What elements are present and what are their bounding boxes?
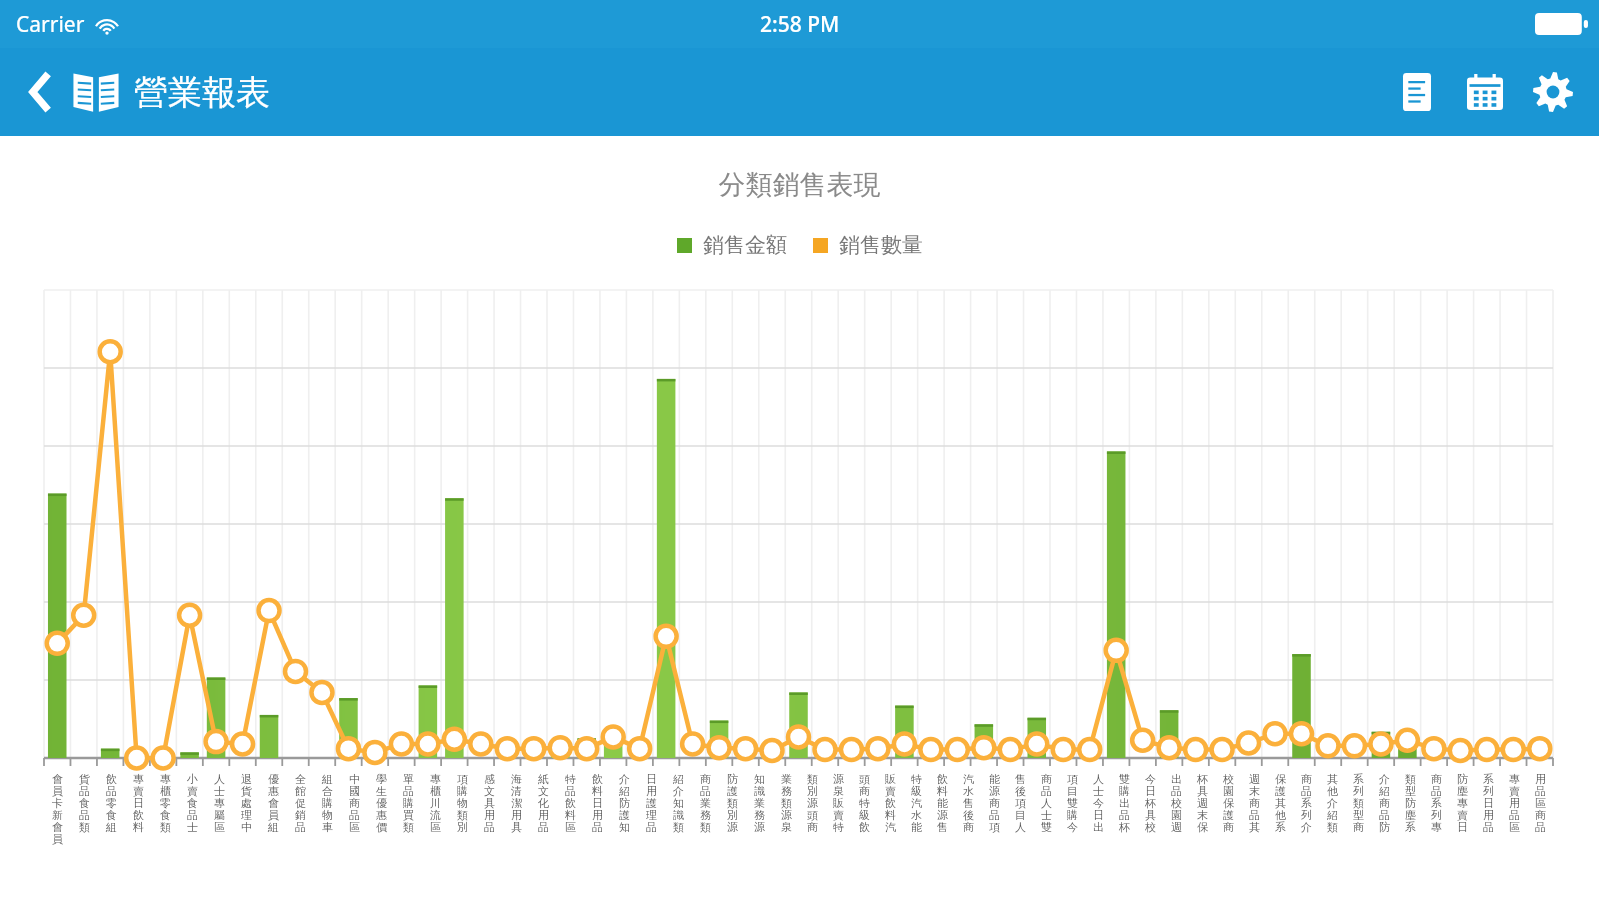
staticText: 保護其他系	[1274, 772, 1287, 834]
staticText: 全館促銷品	[294, 772, 307, 834]
staticText: 出品校園週	[1170, 772, 1183, 834]
staticText: 日用護理品	[645, 772, 658, 834]
staticText: 退貨處理中	[240, 772, 253, 834]
staticText: 項購物類別	[456, 772, 469, 834]
staticText: 介紹防護知	[618, 772, 631, 834]
staticText: 類型防塵系	[1404, 772, 1417, 834]
staticText: 販賣飲料汽	[884, 772, 897, 834]
staticText: 專櫃零食類	[159, 772, 172, 834]
staticText: 汽水售後商	[962, 772, 975, 834]
staticText: 飲料能源售	[936, 772, 949, 834]
staticText: 優惠會員組	[267, 772, 280, 834]
staticText: 人士今日出	[1092, 772, 1105, 834]
staticText: 貨品食品類	[78, 772, 91, 834]
staticText: 營業報表	[134, 71, 270, 114]
staticText: 校園保護商	[1222, 772, 1235, 834]
staticText: 專賣用品區	[1508, 772, 1521, 834]
staticText: 今日杯具校	[1144, 772, 1157, 834]
staticText: 感文具用品	[483, 772, 496, 834]
button[interactable]: 銷售金額	[677, 232, 787, 258]
staticText: 飲品零食組	[105, 772, 118, 834]
staticText: 單品購買類	[402, 772, 415, 834]
button[interactable]: Calendar	[1457, 64, 1513, 120]
staticText: 頭商特級飲	[858, 772, 871, 834]
staticText: 知識業務源	[753, 772, 766, 834]
staticText: 專櫃川流區	[429, 772, 442, 834]
staticText: 專賣日飲料	[132, 772, 145, 834]
staticText: 商品系列專	[1430, 772, 1443, 834]
staticText: 飲料日用品	[591, 772, 604, 834]
staticText: 系列日用品	[1482, 772, 1495, 834]
staticText: 系列類型商	[1352, 772, 1365, 834]
staticText: 紹介知識類	[672, 772, 685, 834]
staticText: 特品飲料區	[564, 772, 577, 834]
staticText: 紙文化用品	[537, 772, 550, 834]
staticText: 特級汽水能	[910, 772, 923, 834]
staticText: 海清潔用具	[510, 772, 523, 834]
staticText: 2:58 PM	[760, 10, 840, 39]
button[interactable]: Settings	[1525, 64, 1581, 120]
staticText: 週末商品其	[1248, 772, 1261, 834]
staticText: 杯具週末保	[1196, 772, 1209, 834]
staticText: 用品區商品	[1534, 772, 1547, 834]
button[interactable]: 銷售數量	[813, 232, 923, 258]
staticText: 銷售數量	[839, 232, 923, 258]
staticText: 人士專屬區	[213, 772, 226, 834]
staticText: 類別源頭商	[806, 772, 819, 834]
staticText: 項目雙購今	[1066, 772, 1079, 834]
button[interactable]: Back	[16, 63, 64, 121]
staticText: Carrier	[16, 10, 85, 39]
staticText: 防塵專賣日	[1456, 772, 1469, 834]
staticText: 商品業務類	[699, 772, 712, 834]
staticText: 會員卡新會員	[51, 772, 64, 846]
staticText: 雙購出品杯	[1118, 772, 1131, 834]
button[interactable]: Report	[1389, 64, 1445, 120]
staticText: 業務類源泉	[780, 772, 793, 834]
staticText: 介紹商品防	[1378, 772, 1391, 834]
staticText: 銷售金額	[703, 232, 787, 258]
staticText: 源泉販賣特	[832, 772, 845, 834]
staticText: 分類銷售表現	[0, 168, 1599, 202]
staticText: 其他介紹類	[1326, 772, 1339, 834]
staticText: 中國商品區	[348, 772, 361, 834]
staticText: 商品系列介	[1300, 772, 1313, 834]
staticText: 組合購物車	[321, 772, 334, 834]
staticText: 小賣食品士	[186, 772, 199, 834]
staticText: 能源商品項	[988, 772, 1001, 834]
staticText: 售後項目人	[1014, 772, 1027, 834]
staticText: 防護類別源	[726, 772, 739, 834]
staticText: 學生優惠價	[375, 772, 388, 834]
staticText: 商品人士雙	[1040, 772, 1053, 834]
